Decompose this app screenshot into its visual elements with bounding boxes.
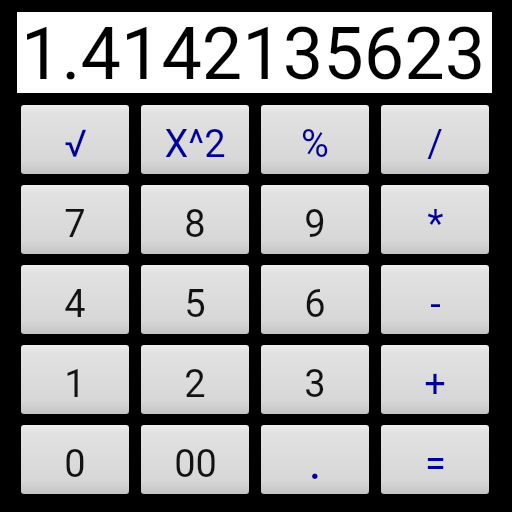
staticText: 6 bbox=[304, 282, 326, 327]
button[interactable]: - bbox=[381, 265, 489, 334]
staticText: √ bbox=[64, 122, 87, 167]
button[interactable]: 3 bbox=[261, 345, 369, 414]
button[interactable]: . bbox=[261, 425, 369, 494]
button[interactable]: 5 bbox=[141, 265, 249, 334]
staticText: 9 bbox=[304, 202, 326, 247]
button[interactable]: 1.4142135623 bbox=[17, 12, 492, 93]
button[interactable]: 9 bbox=[261, 185, 369, 254]
staticText: 2 bbox=[184, 362, 206, 407]
button[interactable]: √ bbox=[21, 105, 129, 174]
staticText: 5 bbox=[184, 282, 206, 327]
staticText: 7 bbox=[64, 202, 86, 247]
staticText: X^2 bbox=[164, 122, 226, 167]
staticText: 3 bbox=[304, 362, 326, 407]
button[interactable]: 7 bbox=[21, 185, 129, 254]
button[interactable]: 2 bbox=[141, 345, 249, 414]
staticText: 1.4142135623 bbox=[21, 12, 486, 93]
button[interactable]: + bbox=[381, 345, 489, 414]
button[interactable]: 00 bbox=[141, 425, 249, 494]
button[interactable]: 1 bbox=[21, 345, 129, 414]
button[interactable]: X^2 bbox=[141, 105, 249, 174]
staticText: % bbox=[301, 122, 329, 167]
button[interactable]: * bbox=[381, 185, 489, 254]
staticText: + bbox=[424, 362, 446, 407]
button[interactable]: = bbox=[381, 425, 489, 494]
button[interactable]: % bbox=[261, 105, 369, 174]
button[interactable]: 8 bbox=[141, 185, 249, 254]
button[interactable]: 0 bbox=[21, 425, 129, 494]
staticText: 8 bbox=[184, 202, 206, 247]
staticText: * bbox=[427, 202, 444, 247]
staticText: = bbox=[425, 442, 446, 487]
staticText: 0 bbox=[64, 442, 86, 487]
staticText: . bbox=[308, 433, 322, 492]
staticText: / bbox=[427, 122, 443, 167]
staticText: 4 bbox=[64, 282, 86, 327]
staticText: 1 bbox=[64, 362, 86, 407]
staticText: - bbox=[430, 282, 441, 327]
staticText: 00 bbox=[174, 442, 217, 487]
button[interactable]: 6 bbox=[261, 265, 369, 334]
button[interactable]: 4 bbox=[21, 265, 129, 334]
button[interactable]: / bbox=[381, 105, 489, 174]
